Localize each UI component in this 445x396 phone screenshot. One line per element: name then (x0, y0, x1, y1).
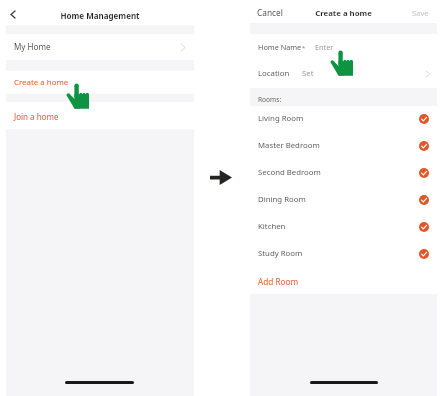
staticText: Set (302, 68, 314, 79)
staticText: Enter (315, 42, 334, 52)
staticText: Create a home (14, 77, 69, 88)
staticText: * (302, 44, 306, 52)
staticText: Living Room (258, 113, 304, 124)
button[interactable]: My Home (6, 34, 194, 60)
staticText: Join a home (14, 111, 59, 122)
button[interactable]: Dining Room (250, 187, 437, 214)
staticText: Master Bedroom (258, 140, 320, 151)
button[interactable]: Join a home (6, 102, 194, 129)
button[interactable]: Cancel (252, 0, 288, 23)
button[interactable]: Living Room (250, 106, 437, 133)
staticText: Second Bedroom (258, 167, 321, 178)
staticText: Create a home (315, 8, 372, 19)
staticText: Home Name (258, 42, 302, 52)
staticText: Home Management (60, 10, 140, 21)
button[interactable]: Study Room (250, 241, 437, 268)
button[interactable]: Second Bedroom (250, 160, 437, 187)
button[interactable]: Save (407, 0, 434, 23)
button[interactable]: Home Name (250, 34, 437, 61)
staticText: Cancel (257, 7, 283, 18)
button[interactable]: Kitchen (250, 214, 437, 241)
staticText: Add Room (258, 276, 299, 287)
button[interactable]: Create a home (6, 71, 194, 94)
staticText: Save (412, 8, 429, 18)
staticText: Study Room (258, 248, 303, 259)
button[interactable]: Master Bedroom (250, 133, 437, 160)
button[interactable]: Location (250, 61, 437, 88)
staticText: Dining Room (258, 194, 306, 205)
button[interactable]: Back (6, 0, 26, 25)
button[interactable]: Add Room (250, 269, 437, 296)
staticText: Kitchen (258, 221, 286, 232)
staticText: My Home (14, 41, 51, 52)
staticText: Rooms: (258, 95, 282, 104)
staticText: Location (258, 68, 290, 79)
